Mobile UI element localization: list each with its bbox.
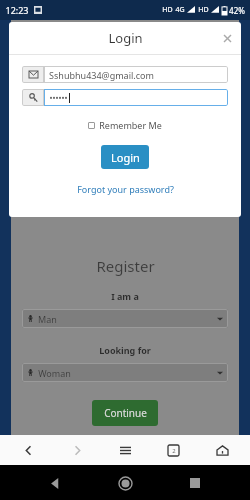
- staticText: Login: [111, 150, 140, 165]
- button[interactable]: Recents: [180, 468, 210, 498]
- staticText: 42%: [229, 5, 245, 16]
- staticText: Woman: [38, 367, 71, 379]
- button[interactable]: ••••••: [22, 89, 228, 106]
- staticText: Remember Me: [99, 119, 162, 131]
- staticText: 4G: [175, 5, 185, 15]
- staticText: Continue: [104, 406, 147, 420]
- staticText: Login: [108, 29, 143, 47]
- staticText: Sshubhu434@gmail.com: [49, 69, 154, 81]
- staticText: 2: [172, 447, 176, 455]
- staticText: HD: [198, 5, 209, 15]
- staticText: Man: [38, 313, 57, 325]
- staticText: Looking for: [99, 344, 151, 356]
- staticText: 12:23: [5, 4, 29, 16]
- button[interactable]: Forward: [57, 435, 97, 465]
- button[interactable]: Sshubhu434@gmail.com: [22, 66, 228, 83]
- staticText: ••••••: [49, 92, 68, 103]
- button[interactable]: Close: [219, 30, 235, 46]
- button[interactable]: Menu: [105, 435, 145, 465]
- button[interactable]: Continue: [92, 400, 158, 426]
- button[interactable]: Man: [22, 309, 228, 328]
- button[interactable]: Tabs: [153, 435, 193, 465]
- button[interactable]: Back: [40, 468, 70, 498]
- staticText: Register: [96, 256, 155, 276]
- staticText: Forgot your password?: [77, 183, 174, 195]
- button[interactable]: Home: [202, 435, 242, 465]
- button[interactable]: Login: [101, 145, 149, 169]
- button[interactable]: Home: [110, 468, 140, 498]
- button[interactable]: Woman: [22, 363, 228, 382]
- staticText: HD: [162, 5, 173, 15]
- button[interactable]: Remember Me: [9, 119, 241, 131]
- button[interactable]: Forgot your password?: [75, 181, 176, 197]
- button[interactable]: Back: [8, 435, 48, 465]
- staticText: I am a: [111, 290, 139, 302]
